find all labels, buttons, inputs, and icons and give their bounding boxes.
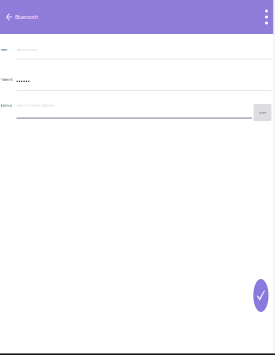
- button[interactable]: SCAN: [253, 104, 271, 121]
- staticText: Bluetooth: [15, 13, 38, 21]
- staticText: Password:: [0, 78, 13, 81]
- staticText: SCAN: [259, 111, 266, 114]
- staticText: Internet Protocol Address: [16, 104, 53, 107]
- staticText: Name:: [0, 48, 8, 51]
- button[interactable]: Back: [3, 0, 15, 34]
- button[interactable]: More options: [259, 0, 273, 34]
- staticText: Address:: [0, 104, 12, 107]
- button[interactable]: Confirm: [253, 279, 268, 312]
- staticText: New connection: [16, 48, 38, 51]
